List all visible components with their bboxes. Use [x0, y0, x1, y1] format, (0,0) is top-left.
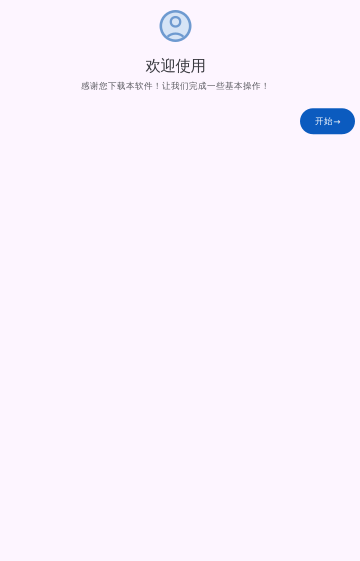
staticText: 开始→ — [315, 116, 340, 127]
button[interactable]: 开始→ — [300, 108, 355, 134]
staticText: 欢迎使用 — [145, 56, 205, 75]
staticText: 感谢您下载本软件！让我们完成一些基本操作！ — [81, 80, 270, 91]
